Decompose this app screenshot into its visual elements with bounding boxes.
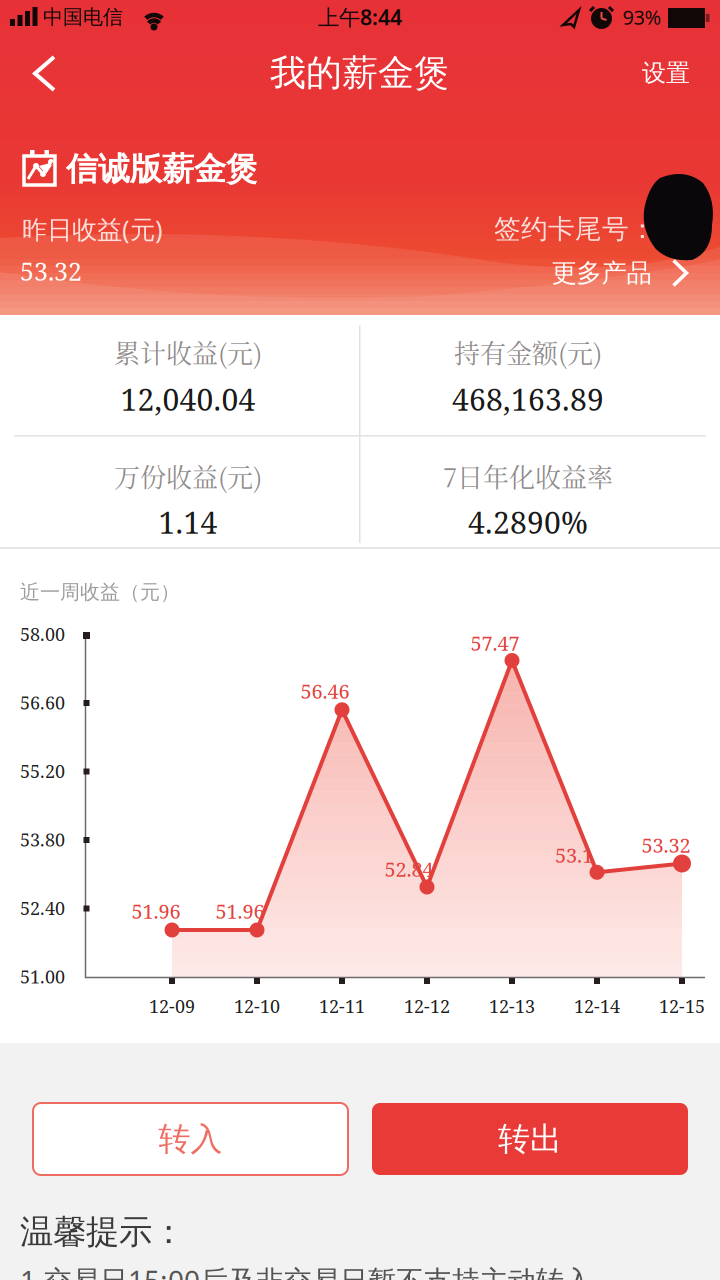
staticText: 56.46 — [300, 677, 349, 705]
button[interactable]: 转入 — [33, 1103, 348, 1175]
button[interactable]: Back — [0, 0, 70, 60]
staticText: 我的薪金煲 — [270, 51, 450, 95]
staticText: 56.60 — [20, 690, 65, 715]
staticText: 53.1 — [555, 841, 593, 869]
staticText: 12-12 — [404, 994, 450, 1018]
staticText: 468,163.89 — [452, 379, 604, 419]
staticText: 上午8:44 — [318, 3, 402, 31]
staticText: 近一周收益（元） — [20, 580, 180, 604]
button[interactable]: 更多产品 — [551, 257, 688, 288]
staticText: 53.80 — [20, 827, 65, 852]
staticText: 4.2890% — [468, 502, 588, 542]
staticText: 7日年化收益率 — [443, 457, 613, 495]
button[interactable]: 设置 — [642, 58, 690, 88]
staticText: 12-15 — [659, 994, 705, 1018]
staticText: 12,040.04 — [120, 379, 255, 419]
staticText: 55.20 — [20, 759, 65, 783]
staticText: 93% — [622, 4, 661, 30]
button[interactable]: 转出 — [372, 1103, 688, 1175]
staticText: 51.00 — [20, 964, 65, 989]
staticText: 累计收益(元) — [114, 333, 262, 371]
staticText: 57.47 — [470, 629, 519, 657]
staticText: 12-14 — [574, 994, 620, 1018]
staticText: 1.交易日15:00后及非交易日暂不支持主动转入 — [20, 1261, 592, 1280]
staticText: 中国电信 — [43, 5, 123, 29]
staticText: 转出 — [498, 1119, 562, 1159]
staticText: 58.00 — [20, 622, 65, 646]
staticText: 12-13 — [489, 994, 535, 1018]
staticText: 万份收益(元) — [114, 457, 262, 495]
staticText: 53.32 — [641, 831, 690, 859]
staticText: 信诚版薪金煲 — [66, 149, 258, 189]
staticText: 转入 — [158, 1119, 222, 1159]
staticText: 签约卡尾号： — [494, 213, 656, 245]
staticText: 1.14 — [158, 502, 217, 542]
staticText: 12-10 — [234, 994, 280, 1018]
staticText: 53.32 — [20, 254, 82, 288]
staticText: 设置 — [642, 58, 690, 88]
staticText: 52.40 — [20, 896, 65, 920]
staticText: 昨日收益(元) — [22, 212, 163, 246]
staticText: 温馨提示： — [20, 1211, 185, 1252]
staticText: 12-11 — [319, 994, 365, 1018]
staticText: 持有金额(元) — [454, 333, 602, 371]
staticText: 51.96 — [131, 897, 180, 925]
staticText: 更多产品 — [551, 257, 651, 288]
staticText: 12-09 — [149, 994, 195, 1018]
staticText: 52.84 — [384, 855, 433, 883]
staticText: 51.96 — [215, 897, 264, 925]
